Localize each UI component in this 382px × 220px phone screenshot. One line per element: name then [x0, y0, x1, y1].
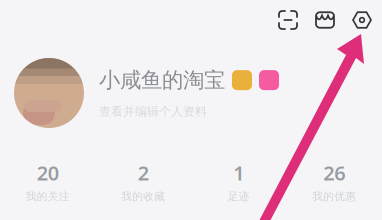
staticText: 2: [138, 159, 149, 186]
staticText: 足迹: [228, 190, 250, 203]
staticText: 20: [37, 159, 59, 186]
staticText: 我的优惠: [312, 190, 356, 203]
button[interactable]: Profile photo: [14, 58, 84, 128]
button[interactable]: 26: [286, 159, 382, 203]
button[interactable]: Settings: [353, 11, 371, 29]
staticText: 小咸鱼的淘宝: [99, 67, 225, 93]
button[interactable]: Shop: [316, 11, 334, 29]
button[interactable]: 2: [95, 159, 191, 203]
button[interactable]: 1: [191, 159, 286, 203]
button[interactable]: Scan: [279, 11, 297, 29]
button[interactable]: 20: [0, 159, 95, 203]
staticText: 我的收藏: [121, 190, 165, 203]
staticText: 查看并编辑个人资料: [99, 104, 207, 119]
staticText: 26: [323, 159, 345, 186]
staticText: 1: [233, 159, 244, 186]
staticText: 我的关注: [26, 190, 70, 203]
